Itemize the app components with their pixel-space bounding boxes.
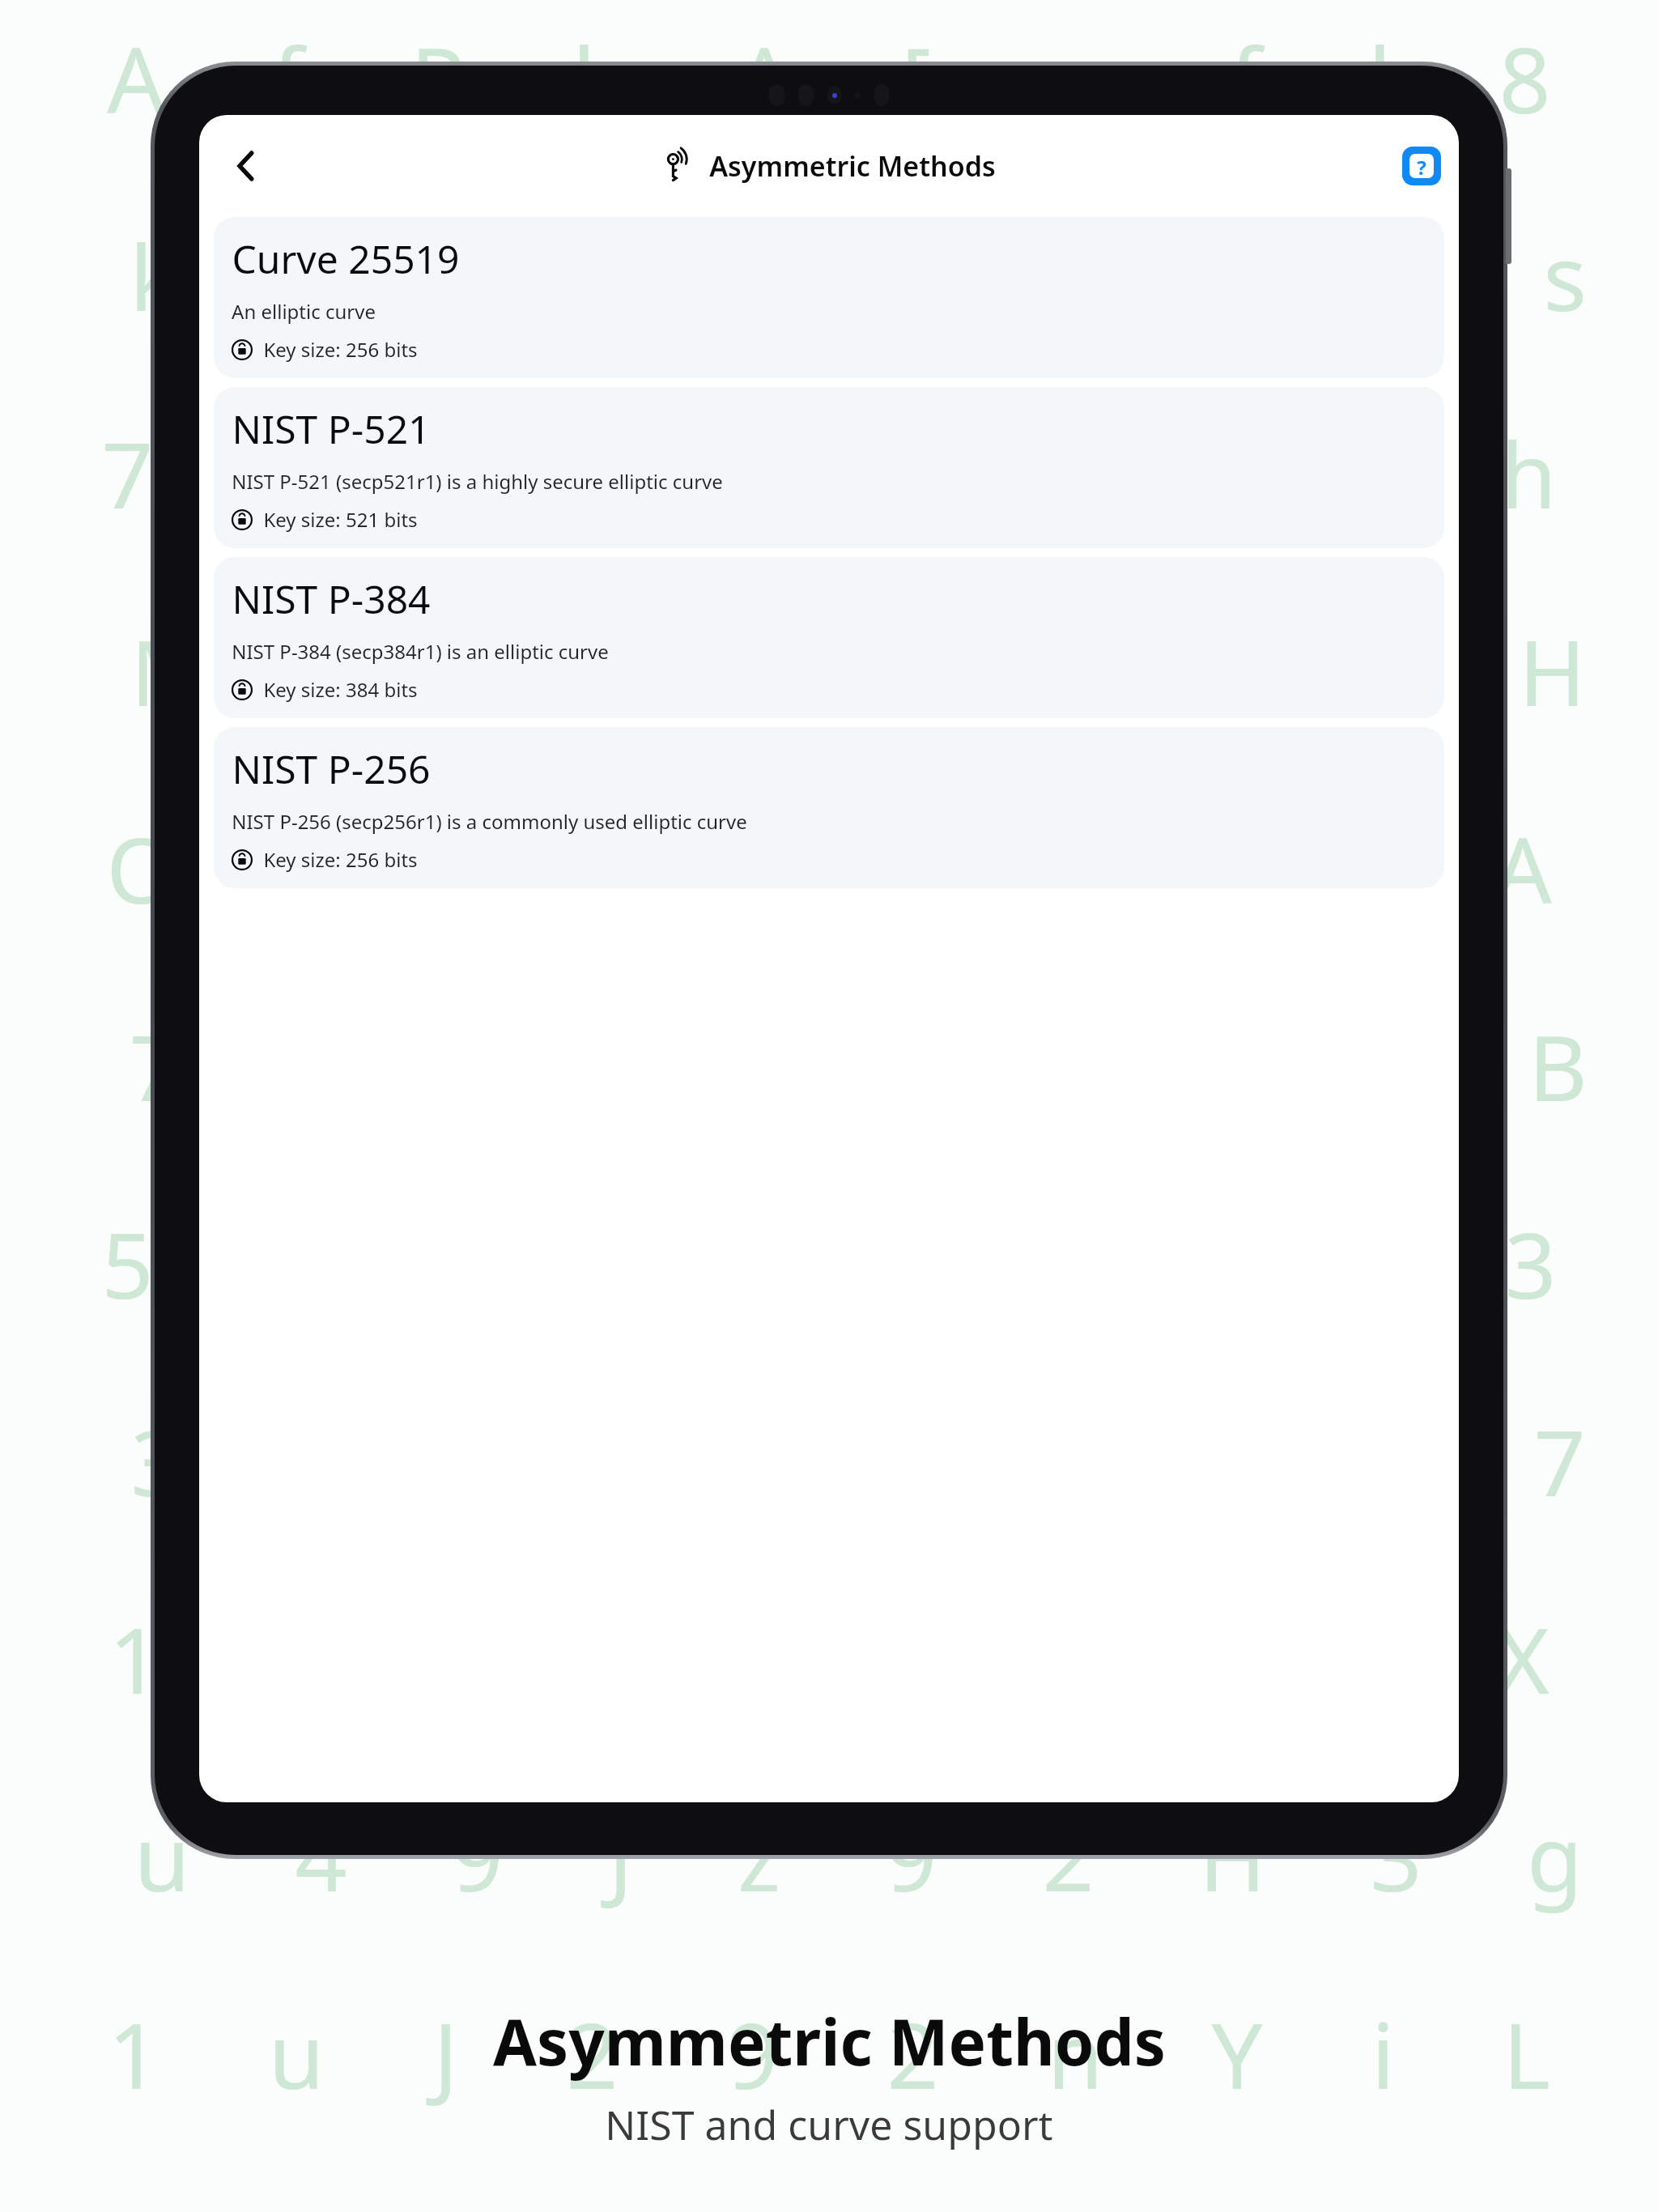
staticText: b — [572, 16, 628, 140]
staticText: Key size: 384 bits — [263, 676, 418, 703]
staticText: NIST P-384 (secp384r1) is an elliptic cu… — [232, 638, 609, 665]
button[interactable]: NIST P-384 — [214, 557, 1444, 718]
staticText: l — [1368, 16, 1392, 140]
staticText: i — [1371, 1992, 1395, 2116]
staticText: h — [1500, 411, 1557, 535]
staticText: [ — [901, 16, 931, 140]
staticText: NIST P-256 — [232, 742, 431, 795]
staticText: Asymmetric Methods — [709, 147, 996, 185]
staticText: 9 — [726, 1992, 779, 2116]
staticText: ? — [1417, 154, 1426, 178]
staticText: c — [1029, 806, 1073, 930]
button[interactable]: NIST P-256 — [214, 727, 1444, 888]
staticText: u — [314, 609, 371, 733]
staticText: 7 — [129, 1004, 181, 1128]
staticText: B — [735, 806, 794, 930]
staticText: X — [1496, 1597, 1550, 1721]
staticText: 4 — [1179, 806, 1231, 930]
staticText: z — [738, 1794, 780, 1918]
staticText: 3 — [1370, 1794, 1422, 1918]
staticText: NIST P-384 — [232, 572, 431, 625]
staticText: 2 — [1042, 1794, 1095, 1918]
staticText: E — [1337, 806, 1388, 930]
staticText: f — [1230, 16, 1261, 140]
staticText: A — [107, 16, 165, 140]
staticText: 1 — [108, 1992, 160, 2116]
button[interactable]: NIST P-521 — [214, 387, 1444, 548]
staticText: H — [1519, 609, 1586, 733]
staticText: Curve 25519 — [232, 232, 460, 285]
staticText: Key size: 256 bits — [263, 846, 418, 873]
staticText: 7 — [101, 411, 154, 535]
staticText: 3 — [1504, 1202, 1557, 1325]
staticText: 2 — [566, 1992, 619, 2116]
staticText: B — [1528, 1004, 1588, 1128]
staticText: NIST P-256 (secp256r1) is a commonly use… — [232, 808, 747, 835]
staticText: k — [130, 214, 178, 338]
staticText: 1 — [108, 1597, 161, 1721]
staticText: 8 — [1499, 16, 1551, 140]
staticText: X — [283, 806, 336, 930]
button[interactable]: Help — [1402, 147, 1441, 185]
staticText: A — [1494, 806, 1552, 930]
staticText: u — [134, 1794, 190, 1918]
staticText: 1 — [472, 609, 525, 733]
staticText: i — [900, 806, 924, 930]
button[interactable]: Curve 25519 — [214, 217, 1444, 378]
staticText: J — [608, 1794, 633, 1918]
staticText: Key size: 256 bits — [263, 336, 418, 363]
staticText: N — [278, 214, 348, 338]
staticText: J — [433, 1992, 458, 2116]
staticText: 4 — [295, 1794, 347, 1918]
button[interactable]: Back — [210, 130, 282, 202]
staticText: g — [1527, 1794, 1583, 1918]
staticText: 2 — [886, 1992, 939, 2116]
staticText: A — [256, 411, 314, 535]
staticText: H — [1199, 1794, 1266, 1918]
staticText: M — [130, 609, 213, 733]
staticText: y — [1061, 609, 1108, 733]
staticText: s — [1543, 214, 1587, 338]
staticText: 9 — [885, 1794, 937, 1918]
staticText: z — [589, 411, 631, 535]
staticText: 0 — [908, 609, 960, 733]
staticText: 7 — [1533, 1399, 1586, 1523]
staticText: O — [106, 806, 177, 930]
staticText: q — [750, 609, 806, 733]
staticText: NIST P-521 — [232, 402, 431, 455]
staticText: 5 — [101, 1202, 154, 1325]
staticText: n — [1047, 1992, 1103, 2116]
